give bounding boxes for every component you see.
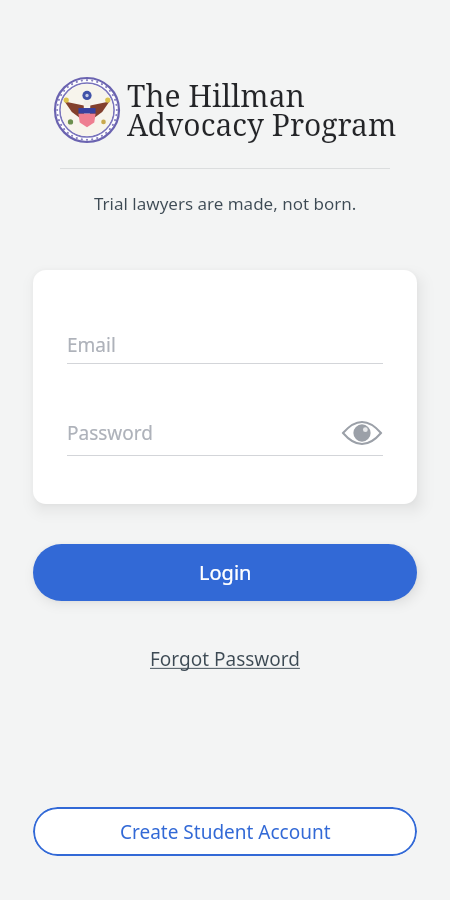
button[interactable]: Login — [33, 544, 417, 601]
staticText: The Hillman Advocacy Program — [127, 75, 397, 145]
staticText: Trial lawyers are made, not born. — [94, 192, 357, 215]
staticText: Login — [199, 559, 252, 586]
staticText: Email — [67, 332, 116, 358]
staticText: Password — [67, 420, 153, 446]
button[interactable]: Password — [67, 420, 383, 446]
button[interactable]: Forgot Password — [150, 646, 300, 672]
button[interactable]: Email — [67, 332, 383, 358]
button[interactable]: Create Student Account — [33, 807, 417, 856]
staticText: Create Student Account — [120, 819, 331, 845]
staticText: Forgot Password — [150, 646, 300, 672]
